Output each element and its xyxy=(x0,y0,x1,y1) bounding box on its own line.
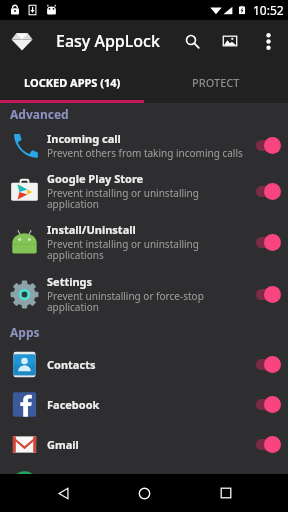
staticText: Settings xyxy=(47,274,93,289)
button[interactable]: More options xyxy=(252,20,285,62)
staticText: Prevent installing or uninstalling appli… xyxy=(47,237,244,262)
button[interactable]: Toggle lock xyxy=(247,472,281,496)
button[interactable]: Google Play Store xyxy=(0,165,288,216)
button[interactable]: Back xyxy=(44,474,82,512)
button[interactable]: Install/Uninstall xyxy=(0,216,288,268)
staticText: Apps xyxy=(10,324,40,340)
button[interactable]: Facebook xyxy=(0,384,288,424)
button[interactable]: Toggle lock xyxy=(247,352,281,376)
button[interactable]: Incoming call xyxy=(0,125,288,165)
staticText: Prevent uninstalling or force-stop appli… xyxy=(47,289,244,314)
button[interactable]: Settings xyxy=(0,268,288,320)
staticText: WhatsApp xyxy=(47,477,104,492)
button[interactable]: Search xyxy=(174,20,210,62)
button[interactable]: WhatsApp xyxy=(0,464,288,504)
button[interactable]: Gallery xyxy=(212,20,249,62)
button[interactable]: Recents xyxy=(207,474,245,512)
button[interactable]: Home xyxy=(125,474,163,512)
staticText: Install/Uninstall xyxy=(47,222,136,237)
staticText: Prevent others from taking incoming call… xyxy=(47,146,243,160)
button[interactable]: Toggle lock xyxy=(247,432,281,456)
staticText: Contacts xyxy=(47,357,96,372)
staticText: Google Play Store xyxy=(47,171,144,186)
button[interactable]: Toggle lock xyxy=(247,179,281,203)
staticText: Prevent installing or uninstalling appli… xyxy=(47,186,244,211)
staticText: Incoming call xyxy=(47,131,121,146)
staticText: PROTECT xyxy=(192,75,240,90)
button[interactable]: Contacts xyxy=(0,344,288,384)
button[interactable]: Toggle lock xyxy=(247,392,281,416)
button[interactable]: PROTECT xyxy=(144,62,288,103)
button[interactable]: LOCKED APPS (14) xyxy=(0,62,144,103)
staticText: Easy AppLock xyxy=(56,30,160,52)
staticText: Gmail xyxy=(47,437,79,452)
button[interactable]: Toggle lock xyxy=(247,282,281,306)
staticText: 10:52 xyxy=(253,2,284,18)
button[interactable]: Gmail xyxy=(0,424,288,464)
button[interactable]: App logo xyxy=(4,20,40,62)
button[interactable]: Toggle lock xyxy=(247,133,281,157)
button[interactable]: Toggle lock xyxy=(247,230,281,254)
staticText: Advanced xyxy=(10,106,69,122)
staticText: Facebook xyxy=(47,397,100,412)
staticText: LOCKED APPS (14) xyxy=(24,75,121,90)
